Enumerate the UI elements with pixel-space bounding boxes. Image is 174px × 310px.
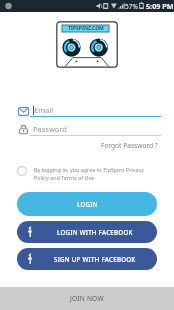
- staticText: LOGIN: [77, 200, 98, 208]
- button[interactable]: JOIN NOW: [0, 287, 174, 310]
- button[interactable]: LOGIN WITH FACEBOOK: [17, 221, 157, 243]
- staticText: Policy and Terms of Use: [34, 174, 95, 181]
- button[interactable]: LOGIN: [17, 192, 157, 216]
- staticText: TIPSPINZ.COM: [68, 25, 104, 32]
- staticText: 57%: [125, 2, 138, 11]
- staticText: JOIN NOW: [70, 294, 104, 303]
- staticText: Forgot Password ?: [101, 141, 158, 150]
- staticText: Email: [34, 105, 54, 115]
- staticText: 5:09 PM: [146, 1, 174, 11]
- button[interactable]: SIGN UP WITH FACEBOOK: [17, 248, 157, 270]
- button[interactable]: Email field: [14, 103, 162, 121]
- staticText: LOGIN WITH FACEBOOK: [57, 228, 133, 236]
- button[interactable]: Password field: [14, 120, 162, 138]
- button[interactable]: By logging in, you agree to TipSpinz Pri…: [15, 163, 133, 180]
- staticText: Password: [33, 124, 67, 134]
- button[interactable]: Forgot Password ?: [98, 140, 160, 151]
- staticText: By logging in, you agree to TipSpinz Pri…: [34, 166, 144, 173]
- staticText: SIGN UP WITH FACEBOOK: [54, 255, 136, 263]
